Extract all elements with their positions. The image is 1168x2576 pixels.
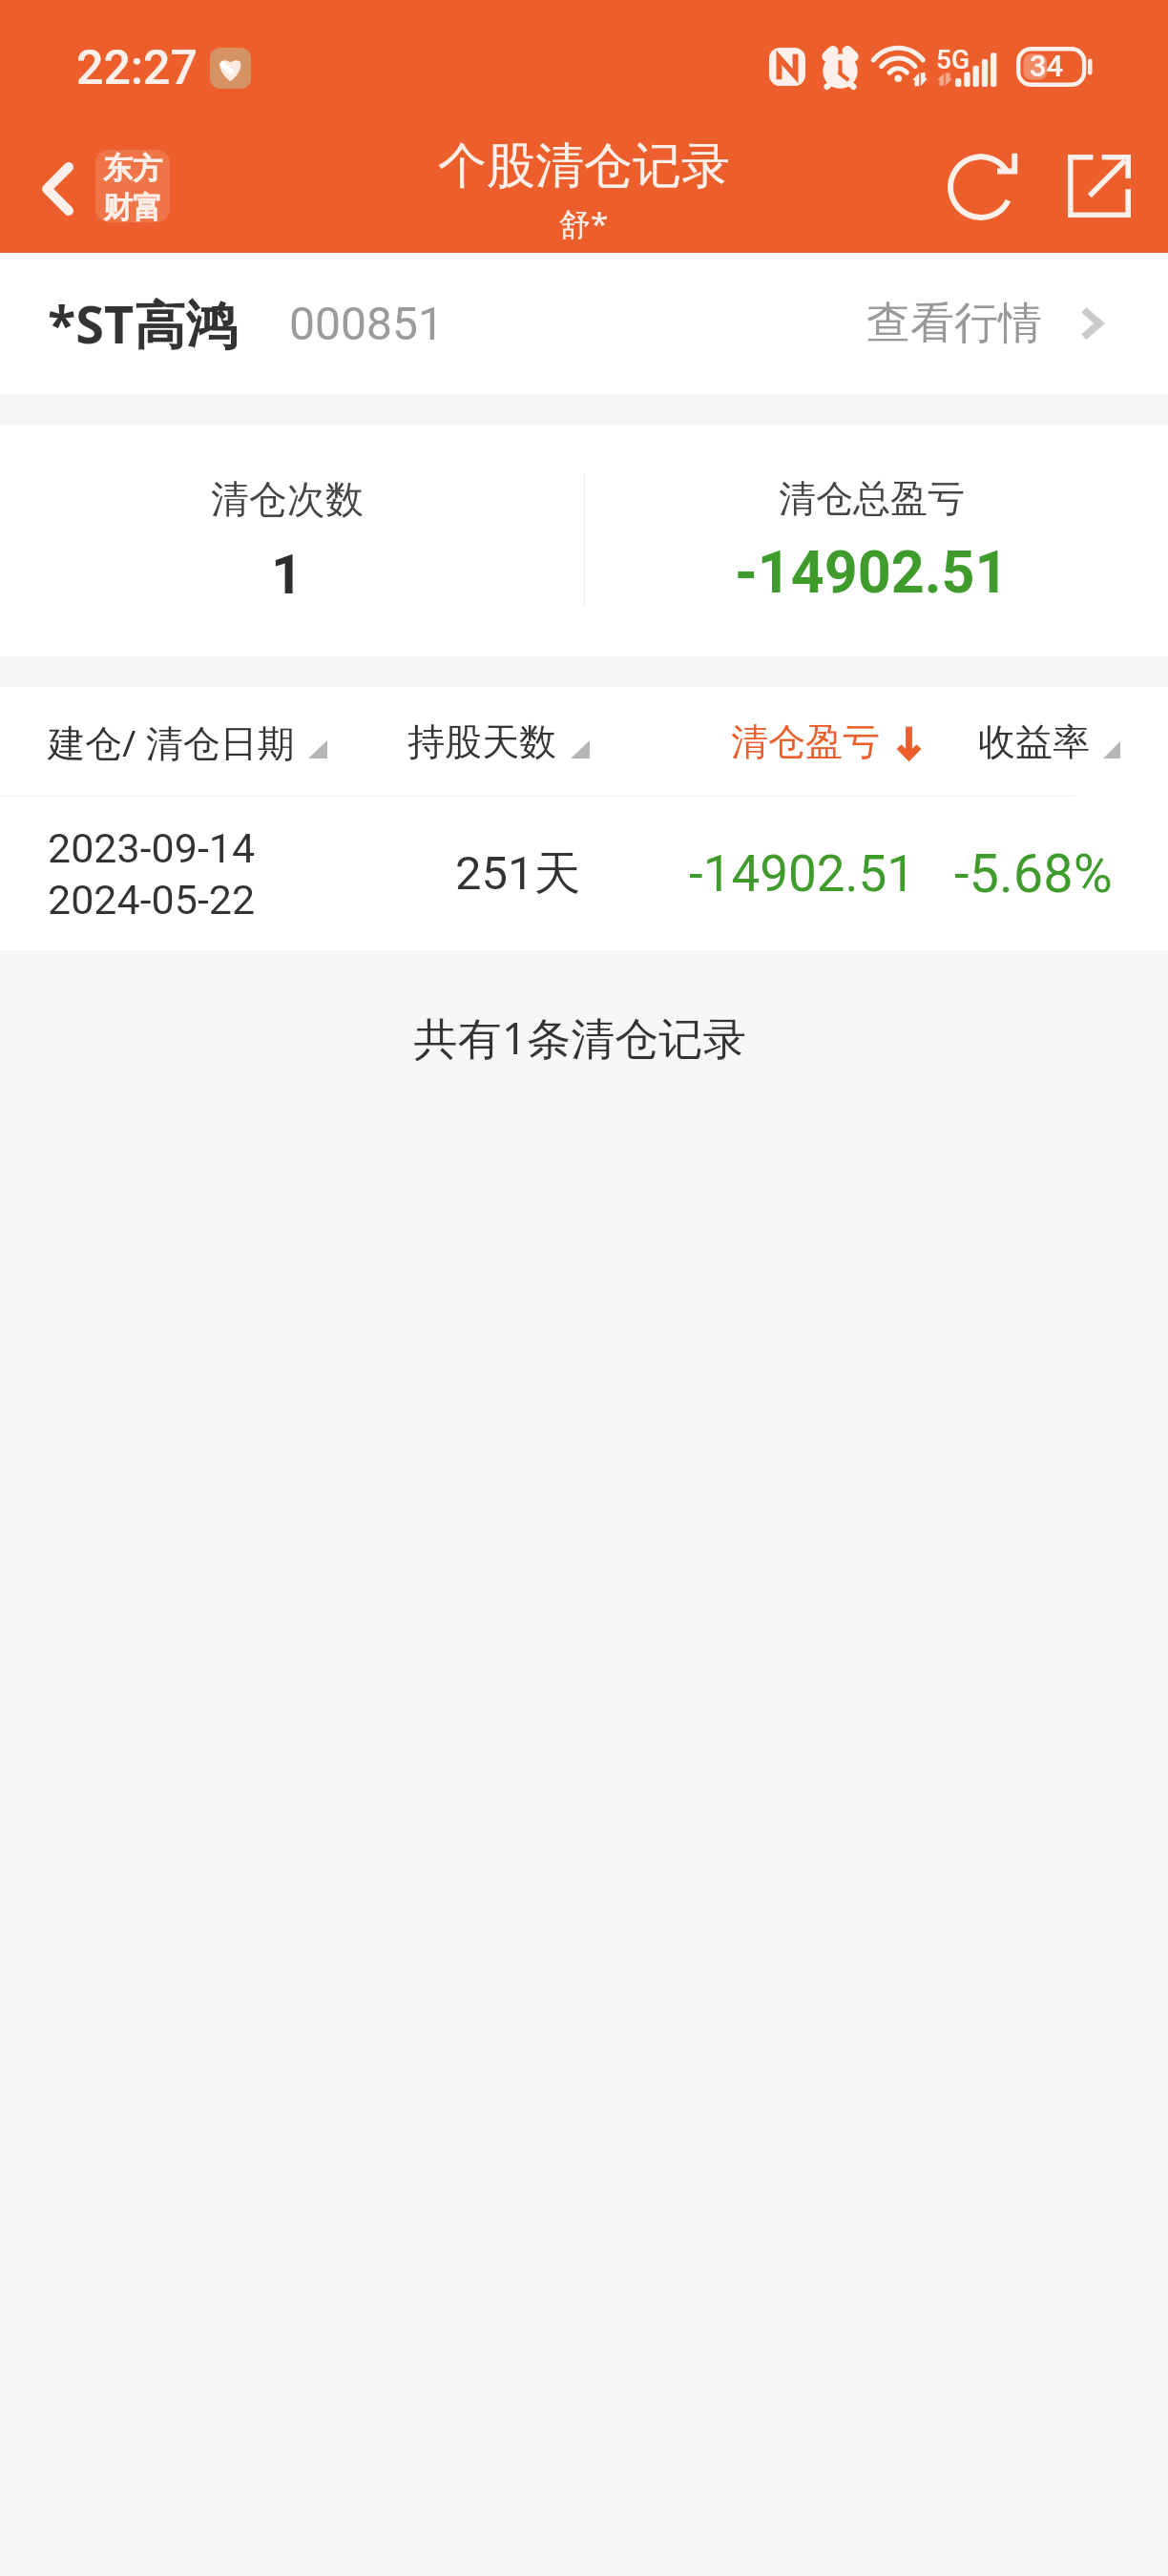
staticText: 舒* — [559, 202, 609, 245]
staticText: 22:27 — [76, 40, 198, 96]
staticText: 2023-09-14 — [48, 824, 256, 872]
button[interactable]: *ST高鸿 — [0, 253, 1168, 394]
button[interactable]: 东方财富 — [95, 150, 170, 222]
staticText: 建仓/ 清仓日期 — [48, 717, 295, 767]
staticText: 34 — [1030, 49, 1064, 83]
staticText: 251天 — [455, 844, 581, 904]
staticText: -5.68% — [954, 842, 1113, 905]
staticText: -14902.51 — [735, 538, 1009, 606]
button[interactable]: 刷新 — [941, 139, 1040, 239]
staticText: 个股清仓记录 — [438, 135, 730, 197]
staticText: 1 — [271, 542, 303, 607]
staticText: 共有1条清仓记录 — [0, 1008, 1164, 1068]
staticText: 财富 — [103, 189, 162, 222]
button[interactable]: 收益率 — [949, 687, 1168, 797]
staticText: 清仓次数 — [211, 475, 364, 523]
button[interactable]: 清仓盈亏 — [706, 687, 949, 797]
staticText: -14902.51 — [689, 844, 916, 904]
button[interactable]: 返回 — [20, 152, 94, 226]
staticText: 查看行情 — [866, 296, 1042, 351]
staticText: *ST高鸿 — [48, 288, 238, 359]
button[interactable]: 建仓/ 清仓日期 — [0, 687, 382, 797]
staticText: 清仓盈亏 — [731, 718, 880, 765]
button[interactable]: 2023-09-14 — [0, 797, 1168, 950]
staticText: 000851 — [289, 297, 444, 350]
button[interactable]: 分享 — [1053, 143, 1145, 235]
staticText: 东方 — [103, 150, 162, 187]
staticText: 持股天数 — [407, 718, 556, 765]
button[interactable]: 持股天数 — [382, 687, 706, 797]
staticText: 5G — [936, 44, 970, 75]
staticText: 清仓总盈亏 — [779, 475, 965, 522]
staticText: 收益率 — [978, 718, 1090, 765]
staticText: 2024-05-22 — [48, 876, 256, 924]
